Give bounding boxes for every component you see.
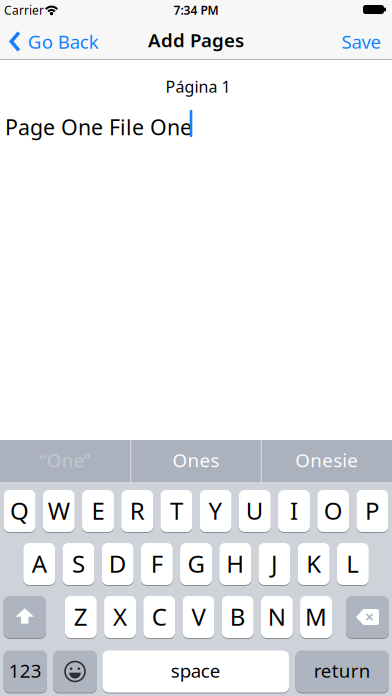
button[interactable]: N [261,595,293,638]
button[interactable]: Ones [131,439,260,481]
staticText: P [365,495,380,526]
button[interactable]: I [278,489,310,532]
staticText: W [48,495,70,526]
staticText: J [271,548,278,579]
staticText: H [226,548,244,579]
staticText: L [346,548,359,579]
staticText: Z [74,601,88,632]
staticText: R [130,495,145,526]
staticText: I [290,495,298,526]
staticText: X [113,601,127,632]
button[interactable]: P [356,489,388,532]
button[interactable]: Onesie [262,439,391,481]
staticText: 123 [9,658,42,683]
button[interactable]: C [143,595,175,638]
button[interactable]: space [102,650,289,693]
staticText: A [32,548,47,579]
button[interactable]: O [317,489,349,532]
staticText: F [151,548,163,579]
staticText: Q [10,495,29,526]
button[interactable]: Emoji [53,650,97,693]
button[interactable]: L [337,542,369,585]
button[interactable]: Y [200,489,232,532]
staticText: Carrier [4,2,44,18]
button[interactable]: X [104,595,136,638]
button[interactable]: Q [4,489,36,532]
staticText: Página 1 [165,76,230,97]
staticText: N [268,601,286,632]
button[interactable]: V [182,595,214,638]
staticText: return [314,658,371,683]
button[interactable]: H [219,542,251,585]
button[interactable]: “One” [1,439,130,481]
staticText: Save [341,29,381,54]
staticText: Add Pages [148,28,244,52]
staticText: Page One File One [5,113,192,141]
staticText: E [91,495,104,526]
staticText: U [246,495,264,526]
staticText: Y [209,495,223,526]
staticText: O [324,495,343,526]
button[interactable]: A [23,542,55,585]
staticText: C [152,601,167,632]
button[interactable]: F [141,542,173,585]
staticText: B [230,601,246,632]
button[interactable]: K [298,542,330,585]
staticText: Onesie [295,447,358,472]
staticText: D [109,548,127,579]
button[interactable]: Delete [346,595,389,638]
button[interactable]: J [258,542,290,585]
staticText: Ones [172,447,219,472]
button[interactable]: return [295,650,389,693]
staticText: K [306,548,321,579]
button[interactable]: Save [341,29,381,54]
staticText: S [72,548,85,579]
staticText: Go Back [28,29,99,54]
staticText: M [305,601,327,632]
button[interactable]: M [300,595,332,638]
button[interactable]: R [121,489,153,532]
button[interactable]: W [43,489,75,532]
staticText: V [191,601,205,632]
staticText: T [170,495,183,526]
button[interactable]: Go Back [9,29,99,54]
staticText: “One” [40,447,91,472]
button[interactable]: S [62,542,94,585]
staticText: G [188,548,205,579]
button[interactable]: 123 [3,650,47,693]
button[interactable]: U [239,489,271,532]
button[interactable]: B [222,595,254,638]
button[interactable]: G [180,542,212,585]
button[interactable]: E [82,489,114,532]
button[interactable]: T [160,489,192,532]
staticText: 7:34 PM [173,2,218,18]
button[interactable]: Shift [3,595,46,638]
staticText: space [171,658,221,683]
button[interactable]: Z [65,595,97,638]
button[interactable]: D [102,542,134,585]
